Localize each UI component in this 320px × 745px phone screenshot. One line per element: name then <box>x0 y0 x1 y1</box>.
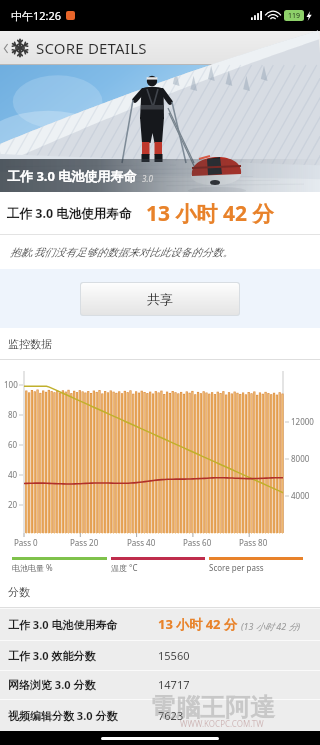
staticText: 3.0 <box>142 173 153 184</box>
staticText: 中午12:26 <box>11 8 62 23</box>
staticText: Score per pass <box>209 562 264 573</box>
staticText: 网络浏览 3.0 分数 <box>8 677 158 692</box>
staticText: Pass 60 <box>183 537 212 548</box>
staticText: 13 小时 42 分 <box>158 615 237 633</box>
staticText: 14717 <box>158 677 190 692</box>
staticText: 温度 °C <box>111 562 138 573</box>
staticText: Pass 80 <box>239 537 268 548</box>
staticText: 工作 3.0 电池使用寿命 <box>7 167 137 185</box>
staticText: Pass 40 <box>127 537 156 548</box>
button[interactable]: 网络浏览 3.0 分数 <box>0 670 320 699</box>
staticText: 電腦王阿達 <box>150 692 275 723</box>
staticText: Pass 20 <box>70 537 99 548</box>
staticText: 12000 <box>291 416 314 427</box>
staticText: 抱歉,我们没有足够的数据来对比此设备的分数。 <box>10 245 234 259</box>
staticText: SCORE DETAILS <box>36 38 147 58</box>
staticText: Pass 0 <box>14 537 38 548</box>
staticText: (13 小时 42 分) <box>241 620 301 632</box>
staticText: 工作 3.0 效能分数 <box>8 648 158 663</box>
staticText: 100 <box>4 379 18 390</box>
staticText: 20 <box>8 499 18 510</box>
staticText: 视频编辑分数 3.0 分数 <box>8 708 158 723</box>
button[interactable]: 工作 3.0 效能分数 <box>0 640 320 670</box>
button[interactable]: 视频编辑分数 3.0 分数 <box>0 699 320 731</box>
button[interactable]: Back <box>0 31 11 65</box>
staticText: 40 <box>8 469 18 480</box>
staticText: WWW.KOCPC.COM.TW <box>180 718 264 729</box>
staticText: 工作 3.0 电池使用寿命 <box>8 617 158 632</box>
staticText: 4000 <box>291 490 310 501</box>
staticText: 7623 <box>158 708 184 723</box>
staticText: 电池电量 % <box>12 562 53 573</box>
staticText: 分数 <box>8 585 30 599</box>
staticText: 工作 3.0 电池使用寿命 <box>7 205 132 222</box>
staticText: 15560 <box>158 648 190 663</box>
staticText: 8000 <box>291 453 310 464</box>
staticText: 80 <box>8 409 18 420</box>
staticText: 119 <box>288 11 301 21</box>
staticText: 监控数据 <box>8 337 52 351</box>
button[interactable]: 工作 3.0 电池使用寿命 <box>0 608 320 640</box>
button[interactable]: 共享 <box>81 283 239 315</box>
staticText: 60 <box>8 439 18 450</box>
staticText: 共享 <box>147 291 173 307</box>
staticText: 13 小时 42 分 <box>146 199 274 228</box>
